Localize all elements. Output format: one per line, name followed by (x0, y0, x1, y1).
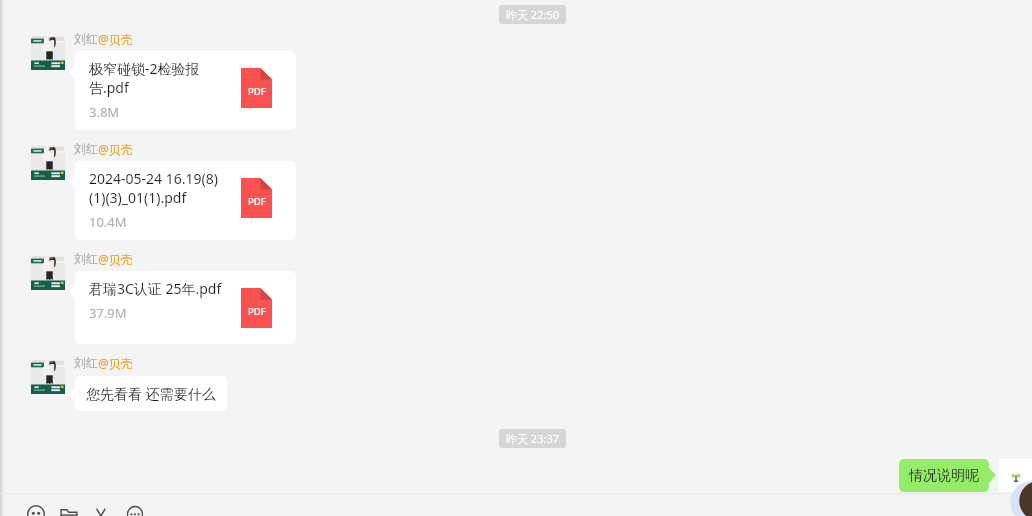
button[interactable]: More (126, 505, 144, 516)
staticText: @贝壳 (98, 251, 133, 267)
staticText: PDF (248, 85, 266, 98)
staticText: 3.8M (89, 103, 120, 121)
button[interactable]: 表情消息 (999, 459, 1032, 492)
button[interactable]: 我的头像 (1010, 481, 1032, 516)
staticText: PDF (248, 195, 266, 208)
button[interactable]: 刘红 的头像 (31, 146, 65, 180)
staticText: (1)(3)_01(1).pdf (89, 188, 187, 207)
staticText: 刘红 (74, 355, 98, 370)
staticText: 昨天 22:50 (506, 7, 559, 22)
staticText: 告.pdf (89, 78, 129, 97)
button[interactable]: Files (60, 505, 78, 516)
button[interactable]: PDF (75, 51, 296, 130)
staticText: 2024-05-24 16.19(8) (89, 169, 218, 188)
staticText: PDF (248, 305, 266, 318)
button[interactable]: 刘红 的头像 (31, 360, 65, 394)
button[interactable]: 情况说明呢 (899, 459, 989, 492)
staticText: 君瑞3C认证 25年.pdf (89, 279, 222, 298)
staticText: 您先看看 还需要什么 (86, 384, 216, 403)
staticText: @贝壳 (98, 355, 133, 371)
staticText: @贝壳 (98, 141, 133, 157)
button[interactable]: 刘红 的头像 (31, 256, 65, 290)
staticText: 刘红 (74, 251, 98, 266)
staticText: 情况说明呢 (909, 467, 979, 485)
button[interactable]: Transfer money (93, 505, 111, 516)
button[interactable]: Emoji (27, 505, 45, 516)
staticText: @贝壳 (98, 31, 133, 47)
staticText: 37.9M (89, 304, 127, 322)
staticText: 昨天 23:37 (506, 431, 559, 446)
staticText: 刘红 (74, 31, 98, 46)
staticText: 极窄碰锁-2检验报 (89, 59, 200, 78)
button[interactable]: 您先看看 还需要什么 (75, 376, 227, 411)
button[interactable]: PDF (75, 271, 296, 344)
staticText: 刘红 (74, 141, 98, 156)
staticText: 10.4M (89, 213, 127, 231)
button[interactable]: PDF (75, 161, 296, 240)
button[interactable]: 刘红 的头像 (31, 36, 65, 70)
